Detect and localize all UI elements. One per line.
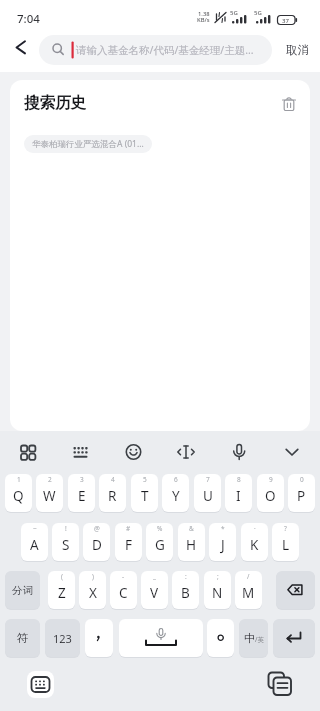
button[interactable]: 6	[162, 474, 189, 512]
button[interactable]: )	[79, 571, 106, 609]
staticText: Q	[13, 487, 24, 505]
button[interactable]: ·	[241, 523, 268, 561]
staticText: 符	[17, 631, 29, 645]
button[interactable]: 123	[45, 619, 80, 657]
staticText: )	[92, 572, 94, 581]
button[interactable]: 符	[5, 619, 40, 657]
button[interactable]: 4	[99, 474, 126, 512]
staticText: !	[65, 524, 67, 533]
button[interactable]: 7	[194, 474, 221, 512]
button[interactable]: 3	[68, 474, 95, 512]
button[interactable]: @	[83, 523, 110, 561]
button[interactable]	[265, 669, 295, 699]
staticText: 7:04	[17, 11, 40, 27]
staticText: %	[157, 524, 163, 533]
button[interactable]	[278, 438, 306, 466]
staticText: KB/s	[197, 16, 210, 24]
button[interactable]	[119, 438, 147, 466]
button[interactable]: 2	[36, 474, 63, 512]
staticText: 4	[111, 475, 115, 484]
staticText: M	[242, 584, 255, 602]
staticText: 9	[269, 475, 273, 484]
button[interactable]: 分词	[5, 571, 40, 609]
staticText: 123	[53, 631, 72, 646]
staticText: #	[126, 524, 131, 533]
button[interactable]: 0	[288, 474, 315, 512]
staticText: 1	[17, 475, 21, 484]
button[interactable]: !	[52, 523, 79, 561]
button[interactable]	[119, 619, 203, 657]
staticText: A	[30, 536, 39, 554]
button[interactable]: #	[115, 523, 142, 561]
staticText: 中	[244, 631, 255, 645]
button[interactable]: /	[235, 571, 262, 609]
staticText: ~	[33, 524, 37, 533]
staticText: 7	[206, 475, 210, 484]
staticText: 5G	[230, 9, 238, 17]
staticText: O	[265, 487, 276, 505]
staticText: 0	[300, 475, 304, 484]
button[interactable]	[207, 619, 234, 657]
button[interactable]: ~	[21, 523, 48, 561]
staticText: G	[155, 536, 165, 554]
staticText: Y	[172, 487, 180, 505]
staticText: U	[203, 487, 213, 505]
staticText: K	[250, 536, 259, 554]
staticText: @	[94, 524, 100, 533]
button[interactable]	[172, 438, 200, 466]
staticText: 1.38	[198, 10, 210, 18]
button[interactable]: 9	[257, 474, 284, 512]
button[interactable]: 华泰柏瑞行业严选混合A (01...	[24, 135, 152, 153]
staticText: B	[181, 584, 190, 602]
button[interactable]	[85, 619, 113, 657]
staticText: 6	[174, 475, 178, 484]
staticText: &	[189, 524, 194, 533]
button[interactable]: 5	[131, 474, 158, 512]
button[interactable]: 取消	[280, 36, 314, 64]
staticText: 请输入基金名称/代码/基金经理/主题...	[76, 43, 254, 57]
staticText: W	[43, 487, 56, 505]
staticText: (	[61, 572, 63, 581]
button[interactable]: _	[141, 571, 168, 609]
staticText: 华泰柏瑞行业严选混合A (01...	[32, 138, 144, 150]
button[interactable]: 8	[225, 474, 252, 512]
staticText: 搜索历史	[24, 93, 86, 113]
button[interactable]: %	[146, 523, 173, 561]
button[interactable]: ?	[272, 523, 299, 561]
staticText: I	[236, 487, 241, 505]
staticText: J	[221, 536, 225, 554]
staticText: P	[297, 487, 306, 505]
staticText: ?	[284, 524, 287, 533]
button[interactable]	[14, 438, 42, 466]
staticText: ;	[217, 572, 219, 581]
button[interactable]	[276, 571, 315, 609]
staticText: H	[186, 536, 197, 554]
staticText: D	[92, 536, 102, 554]
staticText: X	[89, 584, 97, 602]
button[interactable]	[8, 36, 32, 62]
button[interactable]	[273, 619, 315, 657]
button[interactable]	[225, 438, 253, 466]
staticText: 8	[237, 475, 241, 484]
button[interactable]	[66, 438, 94, 466]
staticText: S	[62, 536, 70, 554]
button[interactable]: *	[209, 523, 236, 561]
button[interactable]: ;	[204, 571, 231, 609]
button[interactable]: 请输入基金名称/代码/基金经理/主题...	[39, 35, 272, 65]
staticText: R	[108, 487, 117, 505]
staticText: F	[125, 536, 133, 554]
staticText: N	[212, 584, 223, 602]
staticText: -	[122, 572, 125, 581]
button[interactable]: -	[110, 571, 137, 609]
button[interactable]: (	[48, 571, 75, 609]
button[interactable]: 中	[239, 619, 268, 657]
staticText: /英	[255, 635, 264, 644]
button[interactable]	[277, 92, 301, 116]
staticText: V	[150, 584, 159, 602]
staticText: 分词	[12, 584, 33, 597]
button[interactable]	[27, 671, 54, 698]
button[interactable]: 1	[5, 474, 32, 512]
staticText: T	[141, 487, 149, 505]
button[interactable]: &	[178, 523, 205, 561]
button[interactable]: :	[172, 571, 199, 609]
